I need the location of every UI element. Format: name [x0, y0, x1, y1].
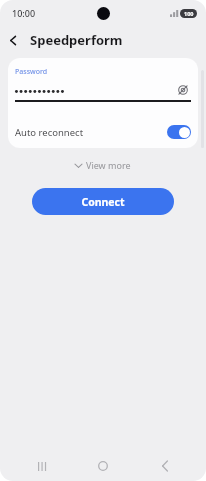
- staticText: Auto reconnect: [15, 126, 84, 139]
- button[interactable]: Connect: [32, 188, 174, 215]
- button[interactable]: Auto reconnect: [8, 120, 198, 144]
- staticText: Password: [15, 67, 48, 77]
- button[interactable]: Home: [83, 451, 123, 481]
- staticText: View more: [86, 159, 131, 171]
- button[interactable]: Recent apps: [22, 451, 62, 481]
- button[interactable]: View more: [69, 156, 137, 174]
- staticText: 100: [184, 10, 194, 17]
- staticText: Connect: [81, 195, 125, 209]
- staticText: Speedperform: [30, 31, 123, 49]
- button[interactable]: Back: [0, 27, 26, 53]
- button[interactable]: Show password: [175, 83, 191, 97]
- button[interactable]: Back: [145, 451, 185, 481]
- staticText: 10:00: [12, 7, 36, 19]
